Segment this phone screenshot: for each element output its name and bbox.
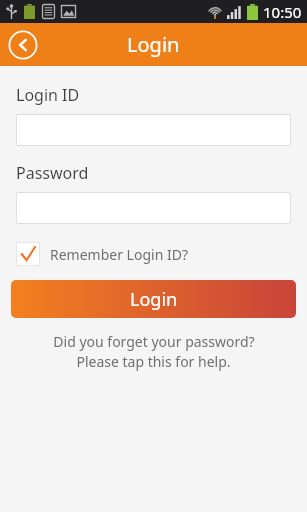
staticText: Please tap this for help.: [76, 352, 231, 371]
staticText: Login: [130, 287, 178, 312]
staticText: Login ID: [16, 84, 80, 106]
staticText: Did you forget your password?: [53, 332, 255, 351]
staticText: Login: [127, 31, 180, 58]
staticText: Password: [16, 162, 89, 184]
button[interactable]: Did you forget your password?: [16, 332, 291, 371]
button[interactable]: [16, 192, 291, 224]
button[interactable]: [16, 114, 291, 146]
button[interactable]: Remember Login ID?: [16, 242, 188, 266]
staticText: Remember Login ID?: [50, 245, 188, 264]
button[interactable]: Back: [8, 30, 38, 60]
button[interactable]: Login: [11, 280, 296, 318]
staticText: 10:50: [263, 2, 302, 22]
